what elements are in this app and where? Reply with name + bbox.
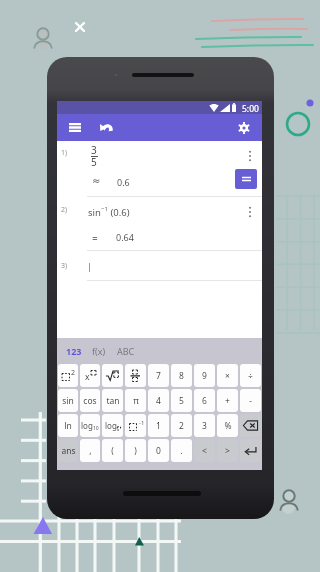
staticText: sin [62, 395, 74, 407]
button[interactable]: > [217, 439, 238, 462]
button[interactable]: ans [58, 439, 78, 462]
staticText: cos [83, 395, 97, 407]
button[interactable]: % [217, 414, 238, 437]
staticText: 123 [66, 345, 82, 357]
staticText: π [133, 395, 139, 407]
staticText: 0.6 [117, 176, 130, 188]
staticText: 5 [179, 395, 184, 407]
button[interactable]: ABC [113, 338, 139, 363]
button[interactable]: 4 [148, 389, 169, 412]
staticText: -1 [139, 419, 145, 427]
button[interactable]: 5 [171, 389, 192, 412]
staticText: ) [134, 445, 137, 457]
button[interactable]: Settings [232, 114, 256, 141]
button[interactable] [125, 364, 146, 387]
staticText: 2 [179, 420, 184, 432]
button[interactable]: - [240, 389, 261, 412]
staticText: ans [61, 445, 76, 457]
staticText: (0.6) [108, 206, 130, 219]
other: Enter [244, 445, 257, 456]
button[interactable]: × [217, 364, 238, 387]
staticText: 5:00 [242, 103, 259, 115]
button[interactable] [102, 364, 123, 387]
staticText: × [225, 370, 230, 382]
button[interactable]: Undo [94, 114, 118, 141]
button[interactable]: More options [243, 204, 257, 220]
staticText: 4 [156, 395, 161, 407]
button[interactable]: f(x) [88, 338, 110, 363]
button[interactable]: ( [102, 439, 123, 462]
staticText: < [202, 445, 207, 457]
button[interactable]: Menu [63, 114, 87, 141]
button[interactable]: ÷ [240, 364, 261, 387]
staticText: + [225, 395, 230, 407]
staticText: log [105, 420, 117, 431]
button[interactable]: Close [71, 18, 88, 35]
staticText: = [92, 231, 98, 245]
staticText: sin [88, 206, 101, 219]
button[interactable]: 0 [148, 439, 169, 462]
staticText: 3 [202, 420, 207, 432]
button[interactable]: cos [80, 389, 100, 412]
staticText: 1) [61, 148, 68, 158]
button[interactable]: + [217, 389, 238, 412]
button[interactable]: x [80, 364, 100, 387]
button[interactable]: . [171, 439, 192, 462]
button[interactable]: 8 [171, 364, 192, 387]
button[interactable]: log [102, 414, 123, 437]
button[interactable]: 1 [148, 414, 169, 437]
button[interactable]: π [125, 389, 146, 412]
staticText: log [81, 420, 93, 431]
other: Backspace [243, 420, 258, 431]
button[interactable]: , [80, 439, 100, 462]
button[interactable]: More options [243, 148, 257, 164]
button[interactable]: ln [58, 414, 78, 437]
button[interactable]: Equals [235, 169, 257, 189]
staticText: 8 [179, 370, 184, 382]
button[interactable]: log [80, 414, 100, 437]
staticText: ( [111, 445, 114, 457]
staticText: 3) [61, 261, 68, 271]
staticText: > [225, 445, 230, 457]
staticText: ÷ [248, 370, 253, 382]
staticText: 3 [91, 143, 97, 157]
button[interactable]: Enter [240, 439, 261, 462]
button[interactable]: 123 [62, 338, 86, 363]
button[interactable]: 9 [194, 364, 215, 387]
button[interactable]: 2 [171, 414, 192, 437]
button[interactable]: ) [125, 439, 146, 462]
staticText: 1 [156, 420, 161, 432]
staticText: ≈ [92, 175, 101, 187]
staticText: % [224, 420, 232, 432]
button[interactable]: Backspace [240, 414, 261, 437]
button[interactable]: 7 [148, 364, 169, 387]
button[interactable]: < [194, 439, 215, 462]
staticText: tan [106, 395, 120, 407]
button[interactable]: 2 [58, 364, 78, 387]
staticText: −1 [101, 205, 108, 213]
staticText: x [85, 371, 90, 383]
staticText: 5 [91, 155, 97, 169]
staticText: . [180, 445, 183, 457]
button[interactable]: -1 [125, 414, 146, 437]
staticText: 0 [156, 445, 161, 457]
staticText: 0.64 [116, 231, 134, 243]
staticText: , [89, 445, 92, 457]
staticText: 7 [156, 370, 161, 382]
staticText: - [249, 395, 252, 407]
staticText: 2) [61, 205, 68, 215]
staticText: f(x) [92, 345, 106, 357]
button[interactable]: 6 [194, 389, 215, 412]
button[interactable]: 3 [194, 414, 215, 437]
staticText: 9 [202, 370, 207, 382]
staticText: 2 [71, 368, 76, 378]
staticText: ln [64, 420, 72, 432]
button[interactable]: sin [58, 389, 78, 412]
staticText: 10 [93, 425, 99, 432]
staticText: 6 [202, 395, 207, 407]
staticText: ABC [117, 345, 135, 357]
button[interactable]: tan [102, 389, 123, 412]
